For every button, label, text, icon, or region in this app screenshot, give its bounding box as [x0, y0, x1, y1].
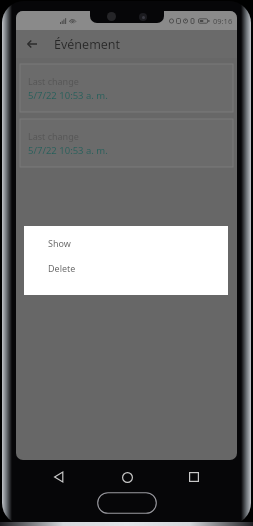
staticText: Show [48, 237, 71, 249]
button[interactable]: Show [24, 236, 228, 250]
button[interactable]: Delete [24, 261, 228, 275]
staticText: Last change [28, 75, 79, 87]
button[interactable]: Last change [20, 64, 233, 112]
other: Fingerprint sensor [97, 492, 157, 514]
button[interactable]: Navigate up [20, 32, 44, 56]
staticText: 09:16 [213, 16, 233, 26]
button[interactable]: Home [116, 466, 138, 488]
staticText: Last change [28, 130, 79, 142]
button[interactable]: Recent apps [183, 466, 205, 488]
staticText: 5/7/22 10:53 a. m. [28, 144, 108, 157]
staticText: Delete [48, 262, 76, 274]
staticText: 5/7/22 10:53 a. m. [28, 89, 108, 102]
button[interactable]: Last change [20, 119, 233, 167]
staticText: Événement [54, 36, 121, 53]
button[interactable]: Back [48, 466, 70, 488]
